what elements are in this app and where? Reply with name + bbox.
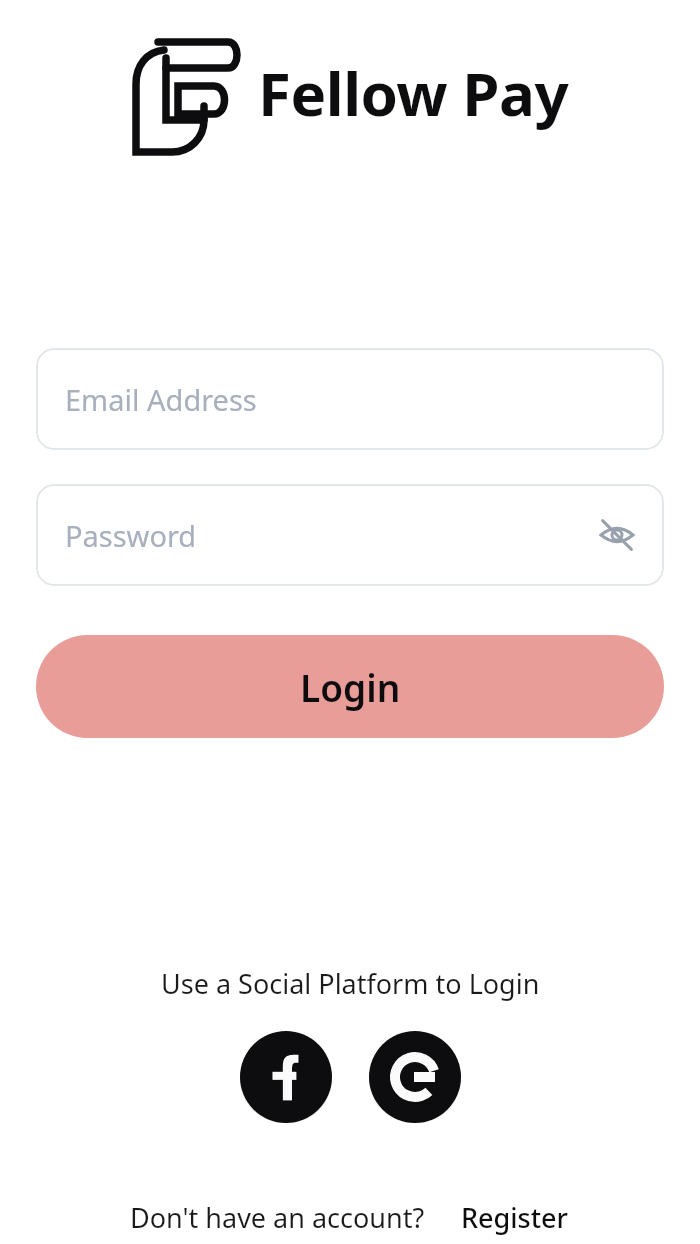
staticText: Don't have an account? xyxy=(130,1199,425,1236)
button[interactable]: Sign in with Facebook xyxy=(240,1031,332,1123)
button[interactable]: Sign in with Google xyxy=(369,1031,461,1123)
staticText: Use a Social Platform to Login xyxy=(161,965,540,1002)
button[interactable]: Login xyxy=(36,635,664,738)
button[interactable]: Show password xyxy=(594,512,640,558)
staticText: Login xyxy=(300,662,401,712)
staticText: Fellow Pay xyxy=(258,52,569,134)
staticText: Password xyxy=(65,516,594,555)
button[interactable]: Register xyxy=(459,1197,570,1238)
button[interactable]: Email Address xyxy=(36,348,664,450)
staticText: Register xyxy=(461,1199,568,1236)
button[interactable]: Password xyxy=(36,484,664,586)
staticText: Email Address xyxy=(65,380,640,419)
